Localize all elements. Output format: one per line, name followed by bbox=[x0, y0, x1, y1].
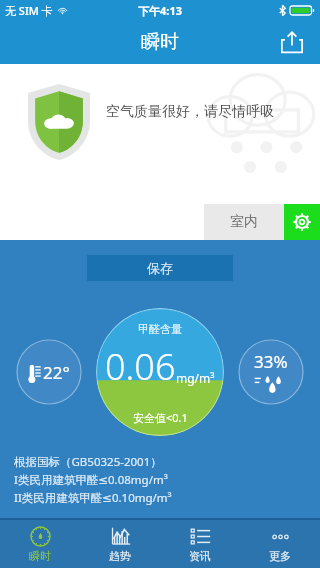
staticText: mg/m³ bbox=[176, 370, 215, 386]
button[interactable]: 资讯 bbox=[160, 520, 240, 568]
button[interactable]: 保存 bbox=[87, 255, 233, 281]
staticText: 室内 bbox=[230, 213, 258, 231]
staticText: 33% bbox=[254, 350, 288, 373]
staticText: 趋势 bbox=[109, 549, 131, 563]
button[interactable]: 更多 bbox=[240, 520, 320, 568]
button[interactable]: Temperature bbox=[16, 339, 82, 405]
staticText: 22° bbox=[43, 361, 70, 384]
button[interactable]: Share bbox=[274, 24, 310, 60]
staticText: II类民用建筑甲醛≤0.10mg/m³ bbox=[14, 490, 172, 506]
staticText: I类民用建筑甲醛≤0.08mg/m³ bbox=[14, 472, 168, 488]
staticText: 0.06 bbox=[105, 342, 176, 391]
staticText: 根据国标（GB50325-2001） bbox=[14, 454, 162, 470]
staticText: 保存 bbox=[147, 260, 173, 276]
button[interactable]: 趋势 bbox=[80, 520, 160, 568]
button[interactable]: 室内 bbox=[204, 204, 284, 240]
staticText: 瞬时 bbox=[29, 549, 51, 563]
staticText: 无 SIM 卡 bbox=[5, 3, 53, 18]
staticText: 甲醛含量 bbox=[138, 322, 182, 336]
staticText: 空气质量很好，请尽情呼吸 bbox=[106, 103, 274, 121]
button[interactable]: Humidity bbox=[238, 339, 304, 405]
staticText: 资讯 bbox=[189, 549, 211, 563]
staticText: 更多 bbox=[269, 549, 291, 563]
staticText: 安全值<0.1 bbox=[133, 410, 188, 425]
staticText: 下午4:13 bbox=[138, 3, 182, 18]
button[interactable]: Settings bbox=[284, 204, 320, 240]
button[interactable]: 瞬时 bbox=[0, 520, 80, 568]
button[interactable]: 甲醛含量 bbox=[96, 308, 224, 436]
staticText: 瞬时 bbox=[141, 30, 179, 54]
